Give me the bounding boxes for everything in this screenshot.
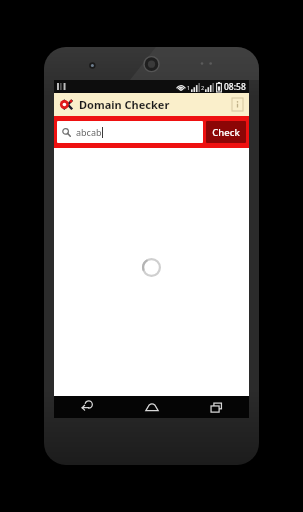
- staticText: 08:58: [224, 81, 246, 93]
- button[interactable]: abcab: [57, 121, 203, 143]
- staticText: 2: [201, 84, 205, 91]
- staticText: Check: [212, 126, 240, 139]
- button[interactable]: Recent apps: [184, 396, 249, 418]
- button[interactable]: Back: [54, 396, 119, 418]
- staticText: abcab: [76, 126, 102, 138]
- button[interactable]: Info: [230, 96, 245, 113]
- staticText: 1: [187, 84, 191, 91]
- staticText: Domain Checker: [79, 97, 170, 112]
- button[interactable]: Home: [119, 396, 184, 418]
- button[interactable]: Check: [206, 121, 246, 143]
